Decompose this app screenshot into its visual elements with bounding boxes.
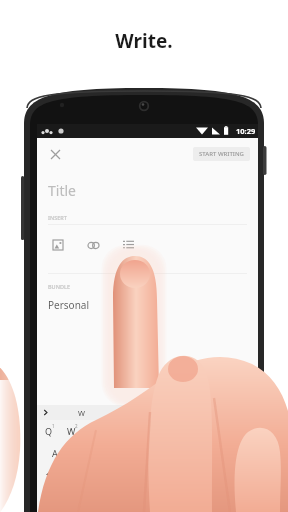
- staticText: START WRITING: [199, 150, 244, 158]
- button[interactable]: ?12: [37, 486, 67, 508]
- staticText: Q: [45, 425, 53, 437]
- staticText: Write.: [115, 28, 173, 54]
- button[interactable]: K: [206, 442, 229, 464]
- button[interactable]: Close: [45, 144, 65, 164]
- button[interactable]: Insert list: [118, 235, 138, 255]
- staticText: W: [67, 425, 76, 437]
- button[interactable]: M: [208, 464, 232, 486]
- button[interactable]: Insert image: [48, 235, 68, 255]
- staticText: E: [90, 425, 96, 437]
- button[interactable]: Thanks: [165, 405, 238, 420]
- button[interactable]: Title: [37, 170, 258, 210]
- button[interactable]: O: [214, 420, 236, 442]
- staticText: 1: [52, 423, 55, 429]
- button[interactable]: T: [126, 420, 148, 442]
- staticText: G: [145, 447, 152, 459]
- button[interactable]: W: [60, 420, 82, 442]
- staticText: 2: [75, 423, 78, 429]
- staticText: V: [145, 469, 151, 481]
- staticText: P: [244, 425, 250, 437]
- staticText: BUNDLE: [48, 283, 70, 290]
- staticText: Personal: [48, 298, 90, 312]
- button[interactable]: Insert link: [83, 235, 103, 255]
- button[interactable]: Backspace: [232, 464, 258, 486]
- button[interactable]: More suggestions: [37, 405, 53, 420]
- staticText: A: [52, 447, 58, 459]
- button[interactable]: E: [82, 420, 104, 442]
- button[interactable]: Space: [67, 486, 228, 508]
- staticText: Title: [48, 181, 76, 200]
- button[interactable]: I: [109, 405, 165, 420]
- button[interactable]: L: [229, 442, 252, 464]
- button[interactable]: A: [43, 442, 67, 464]
- button[interactable]: Shift: [37, 464, 63, 486]
- staticText: W: [78, 408, 85, 418]
- button[interactable]: I: [192, 420, 214, 442]
- button[interactable]: Q: [37, 420, 60, 442]
- button[interactable]: P: [236, 420, 258, 442]
- staticText: INSERT: [48, 214, 67, 221]
- button[interactable]: Enter: [228, 486, 258, 508]
- button[interactable]: Personal: [37, 298, 258, 312]
- button[interactable]: G: [137, 442, 160, 464]
- button[interactable]: V: [136, 464, 160, 486]
- staticText: Thanks: [189, 408, 215, 418]
- staticText: 10:29: [236, 126, 256, 136]
- button[interactable]: W: [53, 405, 109, 420]
- button[interactable]: START WRITING: [193, 147, 250, 161]
- button[interactable]: R: [104, 420, 126, 442]
- button[interactable]: Y: [148, 420, 170, 442]
- staticText: L: [238, 447, 243, 459]
